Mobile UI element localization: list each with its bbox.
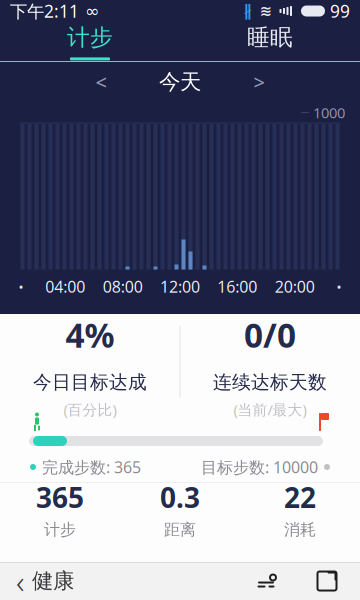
staticText: 16:00 — [217, 276, 257, 297]
staticText: 0/0 — [244, 313, 296, 357]
staticText: 今日目标达成 — [33, 371, 147, 394]
staticText: 距离 — [164, 520, 196, 539]
staticText: ∦ — [243, 2, 251, 20]
staticText: 99 — [330, 0, 350, 22]
button[interactable]: 运动 — [244, 562, 288, 600]
staticText: > — [253, 69, 264, 95]
staticText: (百分比) — [63, 400, 116, 419]
button[interactable]: 前一天 — [84, 65, 118, 99]
button[interactable]: ‹ — [0, 562, 90, 600]
staticText: • — [18, 278, 23, 295]
staticText: 0.3 — [160, 479, 200, 516]
staticText: 04:00 — [45, 276, 85, 297]
staticText: 365 — [36, 479, 84, 516]
staticText: 20:00 — [275, 276, 315, 297]
staticText: 4% — [65, 313, 114, 357]
staticText: 计步 — [44, 520, 76, 539]
staticText: 今天 — [159, 69, 201, 95]
staticText: 目标步数: 10000 — [201, 456, 318, 478]
button[interactable]: 睡眠 — [180, 22, 360, 62]
staticText: 12:00 — [160, 276, 200, 297]
staticText: 22 — [284, 479, 316, 516]
button[interactable]: 分享 — [306, 562, 348, 600]
staticText: ‹ — [16, 560, 24, 600]
staticText: ∞ — [79, 1, 99, 21]
staticText: 睡眠 — [247, 24, 293, 51]
staticText: • — [336, 278, 341, 295]
staticText: 计步 — [67, 24, 113, 51]
staticText: 连续达标天数 — [213, 371, 327, 394]
staticText: 完成步数: 365 — [42, 456, 141, 478]
staticText: 1000 — [313, 103, 345, 122]
staticText: 08:00 — [103, 276, 143, 297]
staticText: 下午2:11 — [10, 0, 79, 22]
staticText: (当前/最大) — [233, 400, 306, 419]
button[interactable]: 计步 — [0, 22, 180, 62]
button[interactable]: 后一天 — [242, 65, 276, 99]
staticText: ≋ — [259, 3, 271, 19]
staticText: 健康 — [32, 568, 74, 594]
staticText: < — [95, 69, 106, 95]
staticText: 消耗 — [284, 520, 316, 539]
